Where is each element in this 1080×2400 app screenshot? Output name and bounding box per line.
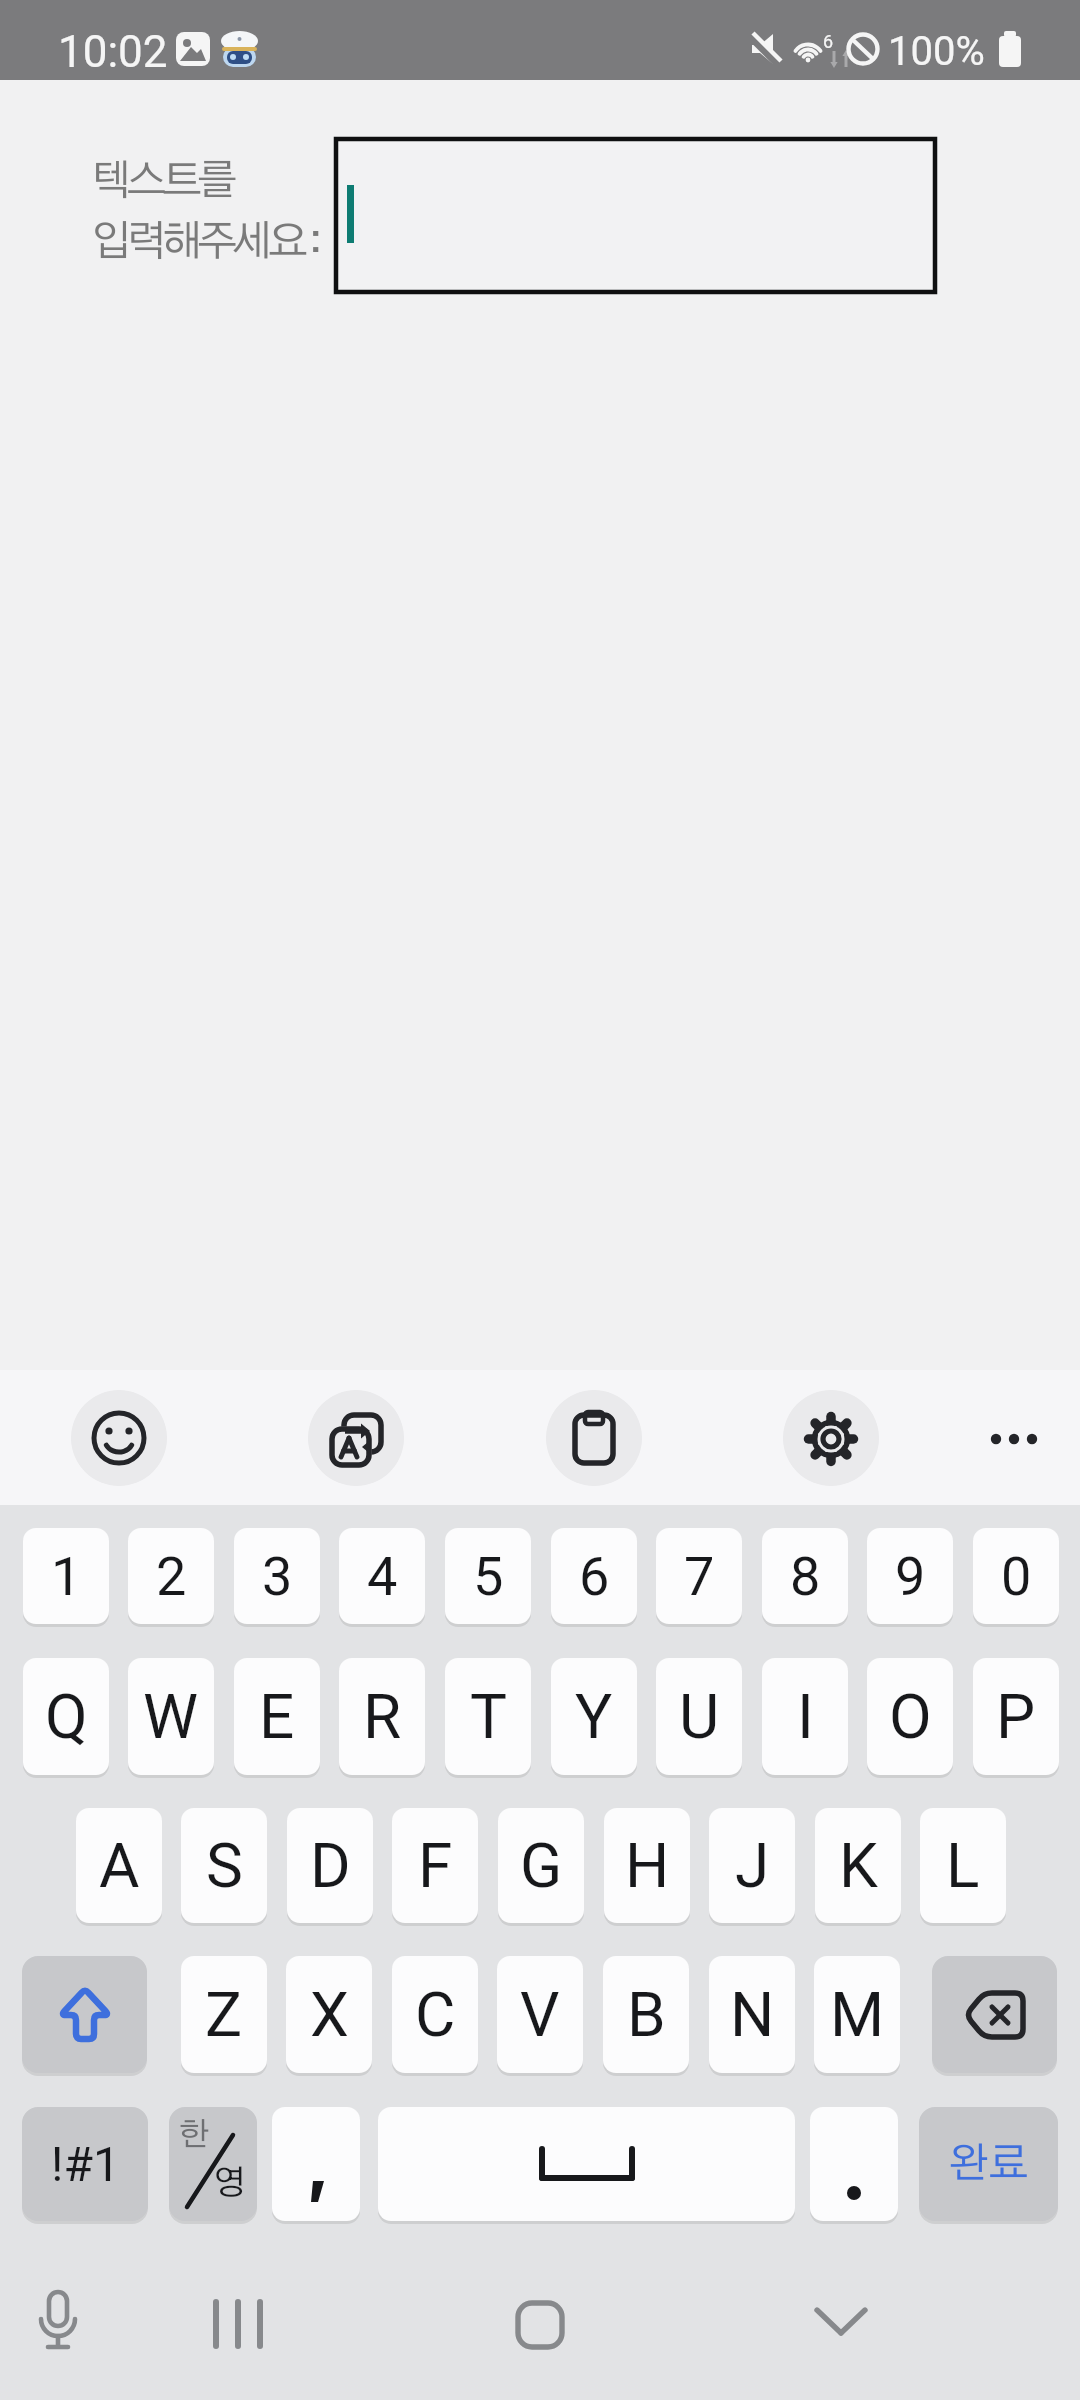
staticText: 6 bbox=[579, 1545, 610, 1608]
staticText: D bbox=[310, 1829, 351, 1902]
staticText: J bbox=[735, 1829, 770, 1902]
staticText: 7 bbox=[684, 1545, 715, 1608]
button[interactable]: 한 bbox=[169, 2107, 257, 2221]
button[interactable]: F bbox=[392, 1808, 478, 1923]
button[interactable]: H bbox=[604, 1808, 690, 1923]
button[interactable]: O bbox=[867, 1658, 953, 1775]
staticText: 2 bbox=[156, 1545, 187, 1608]
staticText: H bbox=[625, 1829, 670, 1902]
button[interactable] bbox=[71, 1390, 167, 1486]
staticText: M bbox=[830, 1978, 885, 2051]
button[interactable] bbox=[36, 2290, 80, 2360]
button[interactable] bbox=[783, 1390, 879, 1486]
staticText: 0 bbox=[1001, 1545, 1032, 1608]
button[interactable] bbox=[272, 2107, 360, 2221]
button[interactable]: 7 bbox=[656, 1528, 742, 1624]
button[interactable]: C bbox=[392, 1956, 478, 2073]
button[interactable]: A bbox=[76, 1808, 162, 1923]
staticText: B bbox=[627, 1978, 666, 2051]
button[interactable]: 5 bbox=[445, 1528, 531, 1624]
button[interactable]: E bbox=[234, 1658, 320, 1775]
button[interactable]: R bbox=[339, 1658, 425, 1775]
button[interactable] bbox=[546, 1390, 642, 1486]
button[interactable]: L bbox=[920, 1808, 1006, 1923]
staticText: 8 bbox=[790, 1545, 821, 1608]
staticText: T bbox=[470, 1680, 507, 1753]
button[interactable] bbox=[516, 2301, 564, 2349]
staticText: Q bbox=[45, 1680, 88, 1753]
button[interactable]: B bbox=[603, 1956, 689, 2073]
button[interactable] bbox=[932, 1956, 1057, 2073]
staticText: R bbox=[363, 1680, 402, 1753]
button[interactable] bbox=[378, 2107, 795, 2221]
staticText: V bbox=[520, 1978, 560, 2051]
button[interactable]: 2 bbox=[128, 1528, 214, 1624]
staticText: Y bbox=[575, 1680, 613, 1753]
staticText: 완료 bbox=[948, 2143, 1029, 2185]
staticText: S bbox=[206, 1829, 243, 1902]
button[interactable]: 4 bbox=[339, 1528, 425, 1624]
button[interactable]: 0 bbox=[973, 1528, 1059, 1624]
staticText: !#1 bbox=[51, 2136, 120, 2192]
button[interactable]: W bbox=[128, 1658, 214, 1775]
staticText: 10:02 bbox=[58, 26, 168, 78]
button[interactable] bbox=[22, 1956, 147, 2073]
button[interactable] bbox=[336, 139, 935, 292]
button[interactable]: 완료 bbox=[919, 2107, 1058, 2221]
button[interactable]: N bbox=[709, 1956, 795, 2073]
button[interactable]: !#1 bbox=[22, 2107, 148, 2221]
button[interactable]: M bbox=[814, 1956, 900, 2073]
staticText: 텍스트를 bbox=[91, 160, 233, 202]
button[interactable]: 6 bbox=[551, 1528, 637, 1624]
staticText: I bbox=[797, 1680, 814, 1753]
button[interactable] bbox=[814, 2305, 868, 2339]
staticText: U bbox=[679, 1680, 720, 1753]
button[interactable]: 1 bbox=[23, 1528, 109, 1624]
button[interactable]: 8 bbox=[762, 1528, 848, 1624]
button[interactable]: P bbox=[973, 1658, 1059, 1775]
staticText: X bbox=[310, 1978, 349, 2051]
button[interactable]: K bbox=[815, 1808, 901, 1923]
button[interactable]: J bbox=[709, 1808, 795, 1923]
button[interactable]: Z bbox=[181, 1956, 267, 2073]
staticText: L bbox=[946, 1829, 980, 1902]
button[interactable] bbox=[810, 2107, 898, 2221]
button[interactable]: I bbox=[762, 1658, 848, 1775]
staticText: 5 bbox=[473, 1545, 504, 1608]
button[interactable]: X bbox=[286, 1956, 372, 2073]
staticText: C bbox=[415, 1978, 456, 2051]
staticText: G bbox=[520, 1829, 563, 1902]
button[interactable]: Q bbox=[23, 1658, 109, 1775]
staticText: O bbox=[889, 1680, 932, 1753]
staticText: Z bbox=[205, 1978, 243, 2051]
button[interactable]: 9 bbox=[867, 1528, 953, 1624]
staticText: W bbox=[143, 1680, 199, 1753]
button[interactable] bbox=[211, 2300, 265, 2350]
button[interactable]: T bbox=[445, 1658, 531, 1775]
staticText: E bbox=[259, 1680, 295, 1753]
staticText: K bbox=[839, 1829, 878, 1902]
button[interactable]: D bbox=[287, 1808, 373, 1923]
staticText: 1 bbox=[51, 1545, 82, 1608]
staticText: N bbox=[730, 1978, 775, 2051]
button[interactable]: 3 bbox=[234, 1528, 320, 1624]
button[interactable]: S bbox=[181, 1808, 267, 1923]
staticText: 4 bbox=[367, 1545, 398, 1608]
button[interactable] bbox=[986, 1428, 1046, 1450]
staticText: 한 bbox=[179, 2119, 210, 2151]
staticText: 입력해주세요 : bbox=[91, 221, 318, 263]
staticText: 6 bbox=[823, 31, 834, 52]
staticText: 영 bbox=[213, 2167, 246, 2201]
staticText: A bbox=[99, 1829, 140, 1902]
button[interactable]: V bbox=[497, 1956, 583, 2073]
staticText: 3 bbox=[262, 1545, 293, 1608]
staticText: 9 bbox=[895, 1545, 926, 1608]
staticText: F bbox=[418, 1829, 453, 1902]
staticText: P bbox=[996, 1680, 1036, 1753]
button[interactable]: U bbox=[656, 1658, 742, 1775]
button[interactable] bbox=[308, 1390, 404, 1486]
staticText: 100% bbox=[888, 28, 985, 75]
button[interactable]: G bbox=[498, 1808, 584, 1923]
button[interactable]: Y bbox=[551, 1658, 637, 1775]
